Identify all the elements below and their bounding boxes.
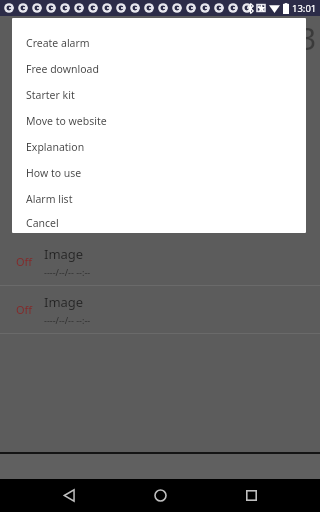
staticText: Free download — [26, 62, 99, 76]
staticText: Off — [16, 254, 33, 269]
button[interactable]: Home — [138, 479, 182, 512]
button[interactable]: Alarm list — [12, 186, 306, 212]
button[interactable]: Free download — [12, 56, 306, 82]
button[interactable]: Off — [0, 286, 320, 333]
staticText: Off — [16, 302, 33, 317]
staticText: Alarm list — [26, 192, 73, 206]
staticText: Explanation — [26, 140, 85, 154]
button[interactable]: How to use — [12, 160, 306, 186]
staticText: ----/--/-- --:-- — [44, 314, 91, 326]
staticText: 13:01 — [292, 2, 317, 15]
staticText: Cancel — [26, 216, 59, 230]
button[interactable]: Starter kit — [12, 82, 306, 108]
staticText: Create alarm — [26, 36, 90, 50]
button[interactable]: Move to website — [12, 108, 306, 134]
staticText: 3 — [299, 18, 317, 59]
button[interactable]: Recents — [229, 479, 273, 512]
button[interactable]: Off — [0, 238, 320, 285]
staticText: Image — [44, 245, 84, 263]
button[interactable]: Cancel — [12, 212, 306, 233]
staticText: Move to website — [26, 114, 107, 128]
button[interactable]: Create alarm — [12, 30, 306, 56]
staticText: ----/--/-- --:-- — [44, 266, 91, 278]
button[interactable]: Back — [47, 479, 91, 512]
staticText: How to use — [26, 166, 82, 180]
staticText: Starter kit — [26, 88, 75, 102]
staticText: Image — [44, 293, 84, 311]
button[interactable]: Explanation — [12, 134, 306, 160]
